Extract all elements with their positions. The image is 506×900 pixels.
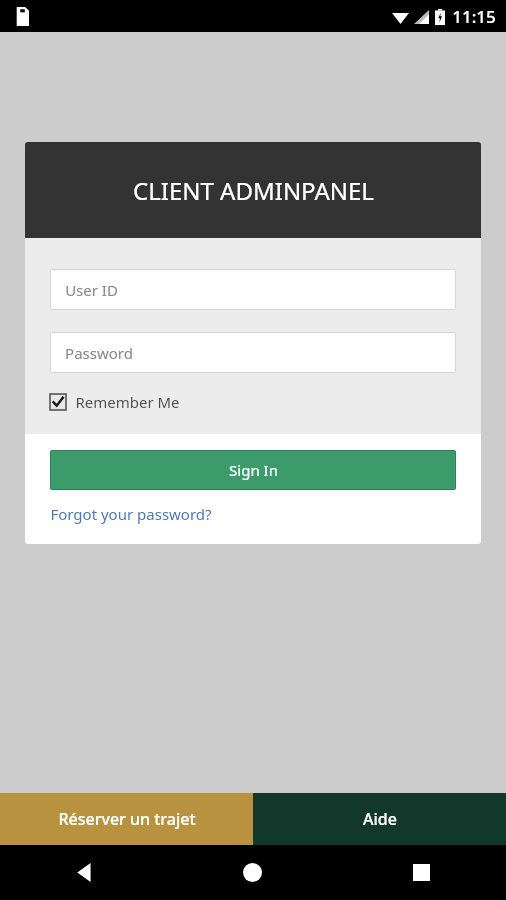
button[interactable]: Back [0,845,168,900]
staticText: Sign In [229,460,278,480]
staticText: Forgot your password? [50,504,212,524]
staticText: 11:15 [452,5,496,28]
staticText: Réserver un trajet [58,808,196,830]
staticText: Aide [363,808,397,830]
button[interactable]: Recent apps [337,845,506,900]
button[interactable]: Sign In [51,451,455,489]
button[interactable]: User ID [51,270,455,309]
staticText: User ID [65,280,118,300]
staticText: Password [65,343,133,363]
staticText: Remember Me [75,392,180,412]
button[interactable]: Réserver un trajet [0,793,253,845]
button[interactable]: Home [168,845,337,900]
button[interactable]: Forgot your password? [50,504,212,524]
staticText: CLIENT ADMINPANEL [133,174,374,207]
button[interactable]: Remember Me [50,392,180,412]
button[interactable]: Password [51,333,455,372]
button[interactable]: Aide [253,793,506,845]
